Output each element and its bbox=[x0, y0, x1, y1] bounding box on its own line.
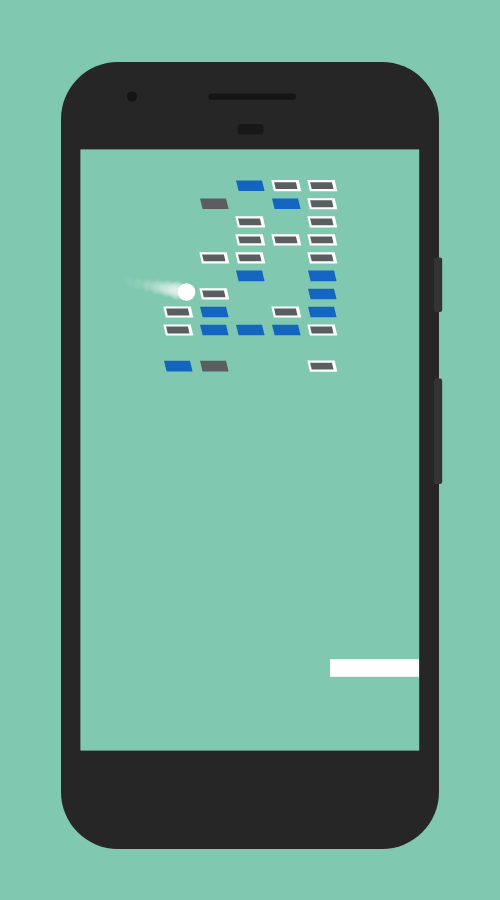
button[interactable]: Power button bbox=[430, 379, 442, 485]
button[interactable]: Breakout game board bbox=[80, 149, 419, 750]
button[interactable]: Volume button bbox=[430, 258, 442, 313]
